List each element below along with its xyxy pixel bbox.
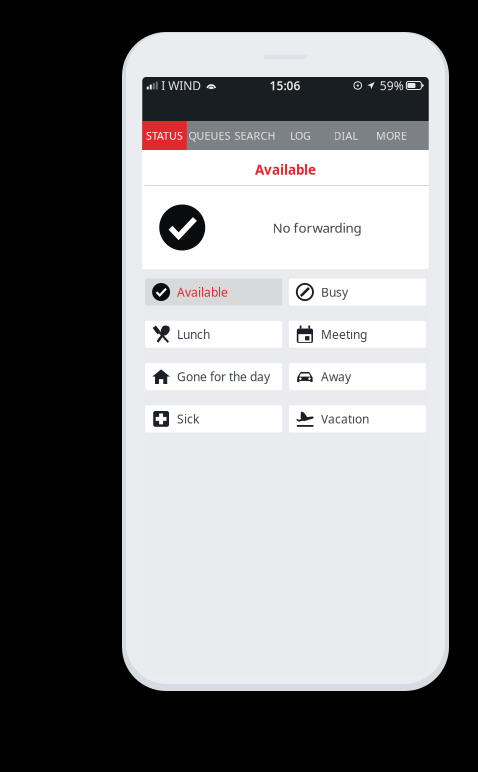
staticText: QUEUES	[189, 128, 231, 143]
staticText: MORE	[376, 128, 407, 143]
staticText: Busy	[321, 284, 348, 300]
staticText: Sick	[177, 411, 199, 427]
button[interactable]: QUEUES	[187, 121, 232, 150]
staticText: No forwarding	[272, 219, 361, 236]
button[interactable]: Meeting	[289, 321, 426, 348]
staticText: 59%	[380, 77, 404, 93]
staticText: LOG	[290, 128, 311, 143]
button[interactable]: DIAL	[323, 121, 369, 150]
staticText: Meeting	[321, 326, 367, 342]
staticText: SEARCH	[235, 128, 276, 143]
button[interactable]: Busy	[289, 278, 426, 305]
staticText: Available	[255, 161, 316, 178]
staticText: DIAL	[334, 128, 359, 143]
button[interactable]: Gone for the day	[145, 363, 282, 390]
button[interactable]: Sick	[145, 405, 282, 432]
button[interactable]: Vacation	[289, 405, 426, 432]
staticText: Vacation	[321, 411, 369, 427]
button[interactable]: Away	[289, 363, 426, 390]
staticText: 15:06	[269, 77, 300, 93]
button[interactable]: LOG	[278, 121, 323, 150]
staticText: Away	[321, 369, 351, 384]
staticText: Available	[177, 284, 228, 300]
button[interactable]: MORE	[369, 121, 414, 150]
staticText: Gone for the day	[177, 369, 270, 384]
button[interactable]: Lunch	[145, 321, 282, 348]
button[interactable]: SEARCH	[232, 121, 278, 150]
button[interactable]: Available	[145, 278, 282, 305]
staticText: Lunch	[177, 326, 210, 342]
staticText: I WIND	[161, 77, 201, 93]
button[interactable]: STATUS	[142, 121, 187, 150]
staticText: STATUS	[146, 128, 183, 143]
